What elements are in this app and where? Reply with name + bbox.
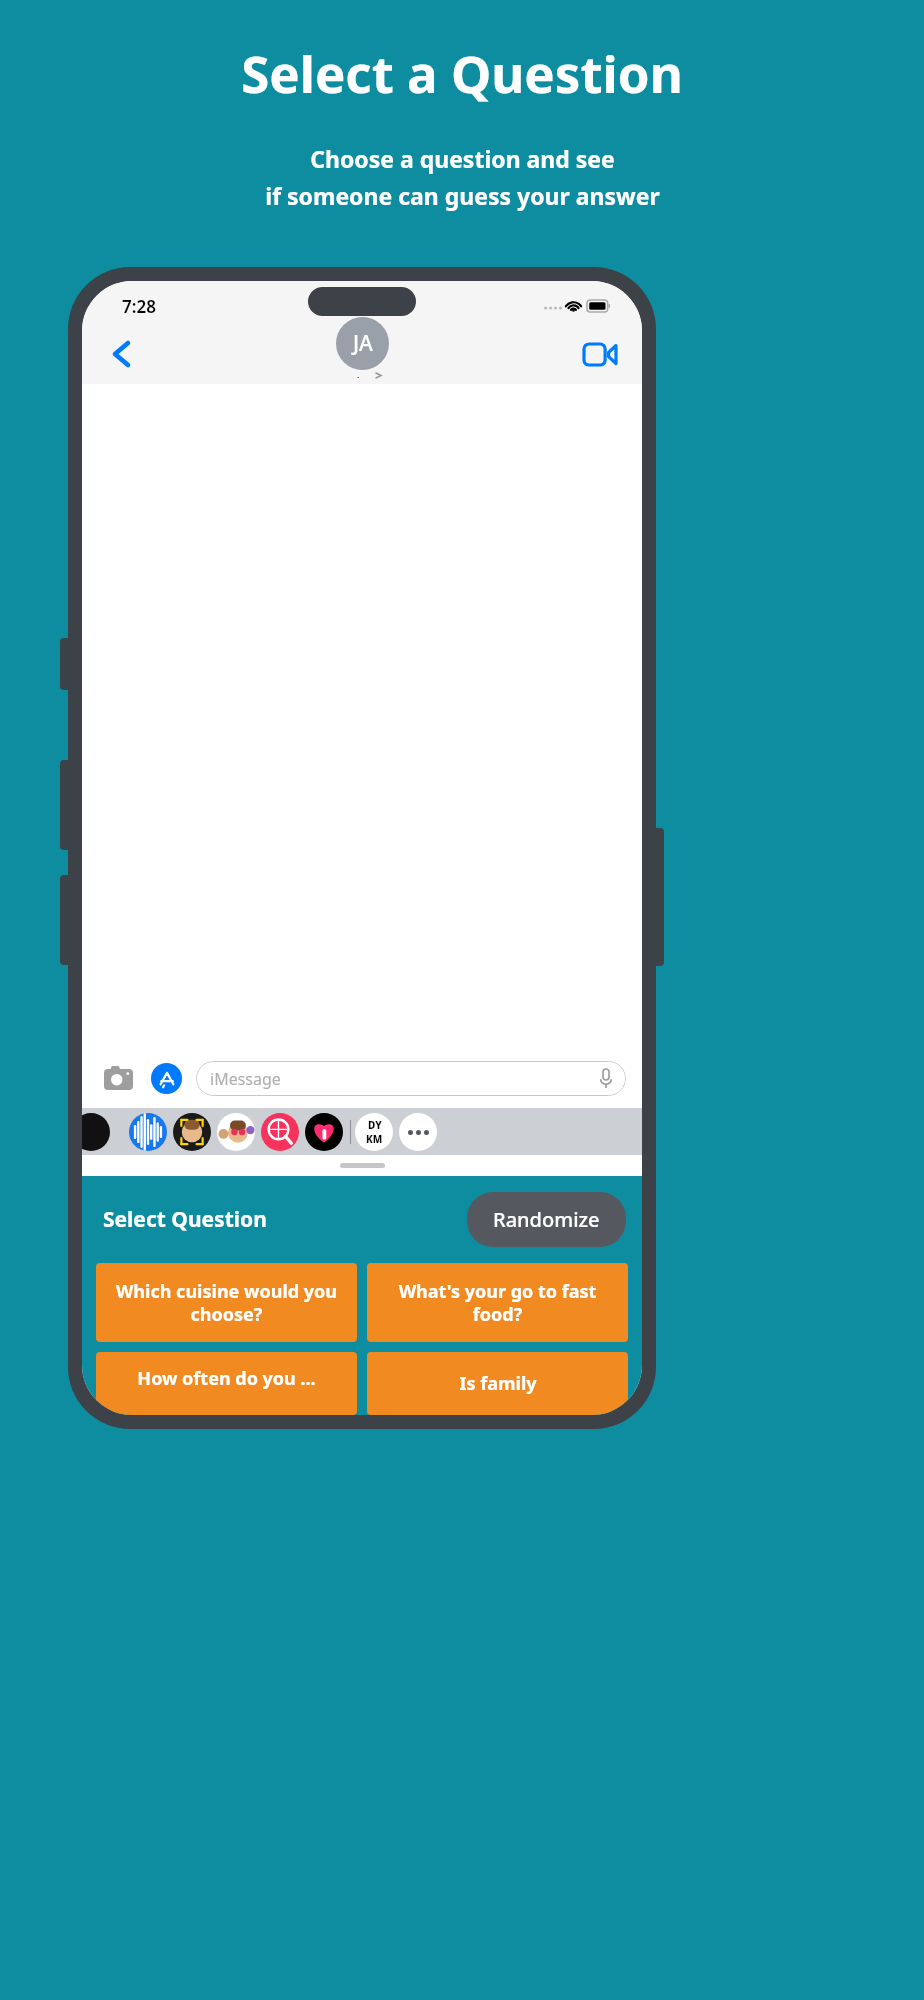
button[interactable]: Back — [100, 334, 140, 374]
button[interactable]: Images search — [261, 1113, 299, 1151]
button[interactable]: Is family — [367, 1352, 628, 1415]
staticText: How often do you ... — [137, 1366, 316, 1391]
button[interactable]: iMessage — [196, 1061, 626, 1096]
button[interactable]: How often do you ... — [96, 1352, 357, 1415]
button[interactable]: Memoji — [173, 1113, 211, 1151]
button[interactable]: Which cuisine would you choose? — [96, 1263, 357, 1342]
staticText: Which cuisine would you choose? — [106, 1279, 347, 1326]
staticText: Is family — [459, 1371, 537, 1396]
button[interactable]: Camera — [98, 1058, 138, 1098]
button[interactable]: Audio message — [129, 1113, 167, 1151]
staticText: Select Question — [103, 1205, 267, 1234]
staticText: if someone can guess your answer — [265, 180, 660, 211]
staticText: JA — [353, 329, 373, 358]
button[interactable]: Health app — [305, 1113, 343, 1151]
button[interactable]: DYKM app — [355, 1113, 393, 1151]
staticText: Select a Question — [241, 38, 683, 107]
staticText: DY — [368, 1118, 382, 1132]
button[interactable]: Stickers — [217, 1113, 255, 1151]
button[interactable]: JA — [336, 317, 389, 378]
staticText: John — [345, 373, 373, 378]
staticText: Choose a question and see — [310, 143, 615, 174]
staticText: KM — [366, 1132, 383, 1146]
button[interactable]: FaceTime video call — [578, 332, 622, 376]
staticText: What's your go to fast food? — [377, 1279, 618, 1326]
button[interactable]: Randomize — [467, 1192, 626, 1247]
staticText: Randomize — [493, 1206, 600, 1233]
button[interactable]: What's your go to fast food? — [367, 1263, 628, 1342]
staticText: 7:28 — [122, 295, 156, 318]
button[interactable]: More apps — [399, 1113, 437, 1151]
button[interactable]: App — [82, 1113, 110, 1151]
staticText: iMessage — [210, 1068, 281, 1090]
button[interactable]: App Store apps — [146, 1058, 186, 1098]
